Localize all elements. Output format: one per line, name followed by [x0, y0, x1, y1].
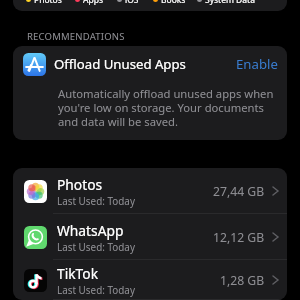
button[interactable]: WhatsApp: [13, 214, 287, 260]
staticText: 12,12 GB: [213, 229, 265, 246]
staticText: Automatically offload unused apps when y…: [58, 86, 277, 129]
staticText: TikTok: [57, 264, 99, 283]
button[interactable]: TikTok: [13, 260, 287, 300]
staticText: RECOMMENDATIONS: [27, 30, 125, 43]
staticText: Photos: [57, 175, 103, 194]
staticText: Apps: [83, 0, 103, 5]
staticText: Offload Unused Apps: [54, 55, 186, 73]
staticText: Enable: [236, 55, 278, 73]
staticText: Books: [161, 0, 186, 5]
staticText: Last Used: Today: [57, 240, 135, 253]
staticText: 27,44 GB: [213, 183, 265, 200]
staticText: Last Used: Today: [57, 283, 135, 296]
button[interactable]: Enable: [236, 55, 278, 73]
staticText: Photos: [34, 0, 62, 5]
button[interactable]: Offload Unused Apps: [13, 46, 287, 140]
staticText: WhatsApp: [57, 221, 124, 240]
staticText: Last Used: Today: [57, 194, 135, 207]
staticText: iOS: [125, 0, 139, 5]
staticText: System Data: [205, 0, 255, 5]
button[interactable]: Photos: [13, 168, 287, 214]
staticText: 1,28 GB: [220, 272, 265, 289]
